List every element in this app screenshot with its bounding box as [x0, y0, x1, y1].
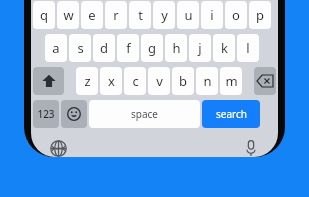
button[interactable]: Change keyboard language: [47, 139, 69, 157]
button[interactable]: Shift: [33, 67, 64, 95]
button[interactable]: p: [249, 1, 271, 29]
staticText: c: [132, 72, 139, 90]
staticText: t: [138, 6, 143, 24]
staticText: a: [52, 39, 60, 57]
staticText: h: [172, 39, 181, 57]
button[interactable]: x: [100, 67, 122, 95]
staticText: o: [232, 6, 240, 24]
button[interactable]: Voice input: [240, 139, 262, 157]
staticText: q: [40, 6, 48, 24]
staticText: u: [184, 6, 193, 24]
button[interactable]: z: [76, 67, 98, 95]
button[interactable]: i: [201, 1, 223, 29]
button[interactable]: r: [105, 1, 127, 29]
button[interactable]: u: [177, 1, 199, 29]
staticText: b: [179, 72, 187, 90]
button[interactable]: v: [148, 67, 170, 95]
button[interactable]: h: [165, 34, 187, 62]
button[interactable]: c: [124, 67, 146, 95]
button[interactable]: g: [141, 34, 163, 62]
button[interactable]: 123: [33, 100, 59, 128]
button[interactable]: n: [196, 67, 218, 95]
staticText: w: [63, 6, 74, 24]
staticText: 123: [37, 107, 55, 121]
staticText: e: [88, 6, 96, 24]
button[interactable]: j: [189, 34, 211, 62]
staticText: p: [256, 6, 264, 24]
staticText: f: [126, 39, 131, 57]
staticText: i: [210, 6, 214, 24]
staticText: x: [108, 72, 115, 90]
staticText: z: [84, 72, 91, 90]
staticText: v: [156, 72, 163, 90]
staticText: s: [77, 39, 84, 57]
button[interactable]: q: [33, 1, 55, 29]
button[interactable]: s: [69, 34, 91, 62]
staticText: r: [113, 6, 119, 24]
staticText: space: [131, 107, 158, 121]
button[interactable]: Emoji: [61, 100, 87, 128]
staticText: d: [100, 39, 108, 57]
staticText: search: [216, 107, 247, 121]
staticText: g: [148, 39, 156, 57]
button[interactable]: search: [202, 100, 260, 128]
staticText: n: [203, 72, 212, 90]
button[interactable]: o: [225, 1, 247, 29]
button[interactable]: e: [81, 1, 103, 29]
button[interactable]: y: [153, 1, 175, 29]
staticText: m: [225, 72, 238, 90]
staticText: y: [161, 6, 168, 24]
staticText: l: [246, 39, 250, 57]
staticText: k: [221, 39, 228, 57]
button[interactable]: space: [89, 100, 200, 128]
button[interactable]: k: [213, 34, 235, 62]
button[interactable]: f: [117, 34, 139, 62]
button[interactable]: a: [45, 34, 67, 62]
button[interactable]: Delete: [254, 67, 276, 95]
button[interactable]: l: [237, 34, 259, 62]
staticText: j: [198, 39, 202, 57]
button[interactable]: w: [57, 1, 79, 29]
button[interactable]: m: [220, 67, 242, 95]
button[interactable]: d: [93, 34, 115, 62]
button[interactable]: b: [172, 67, 194, 95]
button[interactable]: t: [129, 1, 151, 29]
